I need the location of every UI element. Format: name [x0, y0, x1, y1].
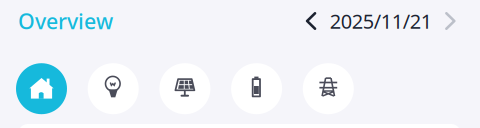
button[interactable]: Previous day	[305, 8, 317, 34]
button[interactable]: Overview	[18, 7, 113, 35]
button[interactable]: Solar	[159, 63, 210, 114]
button[interactable]: Battery	[231, 63, 282, 114]
staticText: Overview	[18, 7, 113, 35]
button[interactable]: Grid	[303, 63, 354, 114]
button[interactable]: Home	[16, 63, 67, 114]
button[interactable]: Lighting	[88, 63, 139, 114]
button[interactable]: Next day	[445, 8, 456, 34]
staticText: 2025/11/21	[330, 8, 432, 34]
